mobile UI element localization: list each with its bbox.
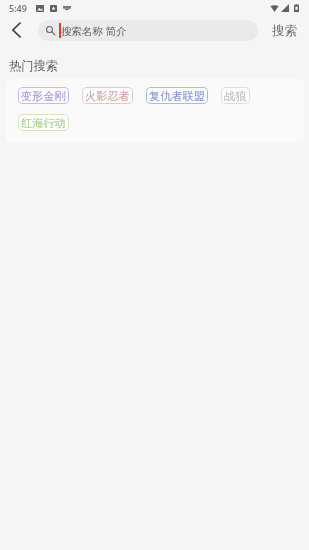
staticText: 搜索 <box>272 23 297 39</box>
staticText: 红海行动 <box>21 116 66 130</box>
button[interactable]: 复仇者联盟 <box>146 87 208 104</box>
button[interactable]: 搜索名称 简介 <box>38 20 258 41</box>
staticText: 5:49 <box>9 2 27 14</box>
staticText: 复仇者联盟 <box>149 89 205 103</box>
staticText: 战狼 <box>224 89 247 103</box>
button[interactable]: 火影忍者 <box>82 87 133 104</box>
button[interactable]: 变形金刚 <box>18 87 69 104</box>
button[interactable]: 搜索 <box>260 20 309 41</box>
button[interactable]: 战狼 <box>221 87 250 104</box>
button[interactable]: Back <box>0 19 33 40</box>
staticText: 热门搜索 <box>9 58 58 73</box>
staticText: 火影忍者 <box>85 89 130 103</box>
button[interactable]: 红海行动 <box>18 114 69 131</box>
staticText: 变形金刚 <box>21 89 66 103</box>
staticText: 搜索名称 简介 <box>61 24 127 38</box>
